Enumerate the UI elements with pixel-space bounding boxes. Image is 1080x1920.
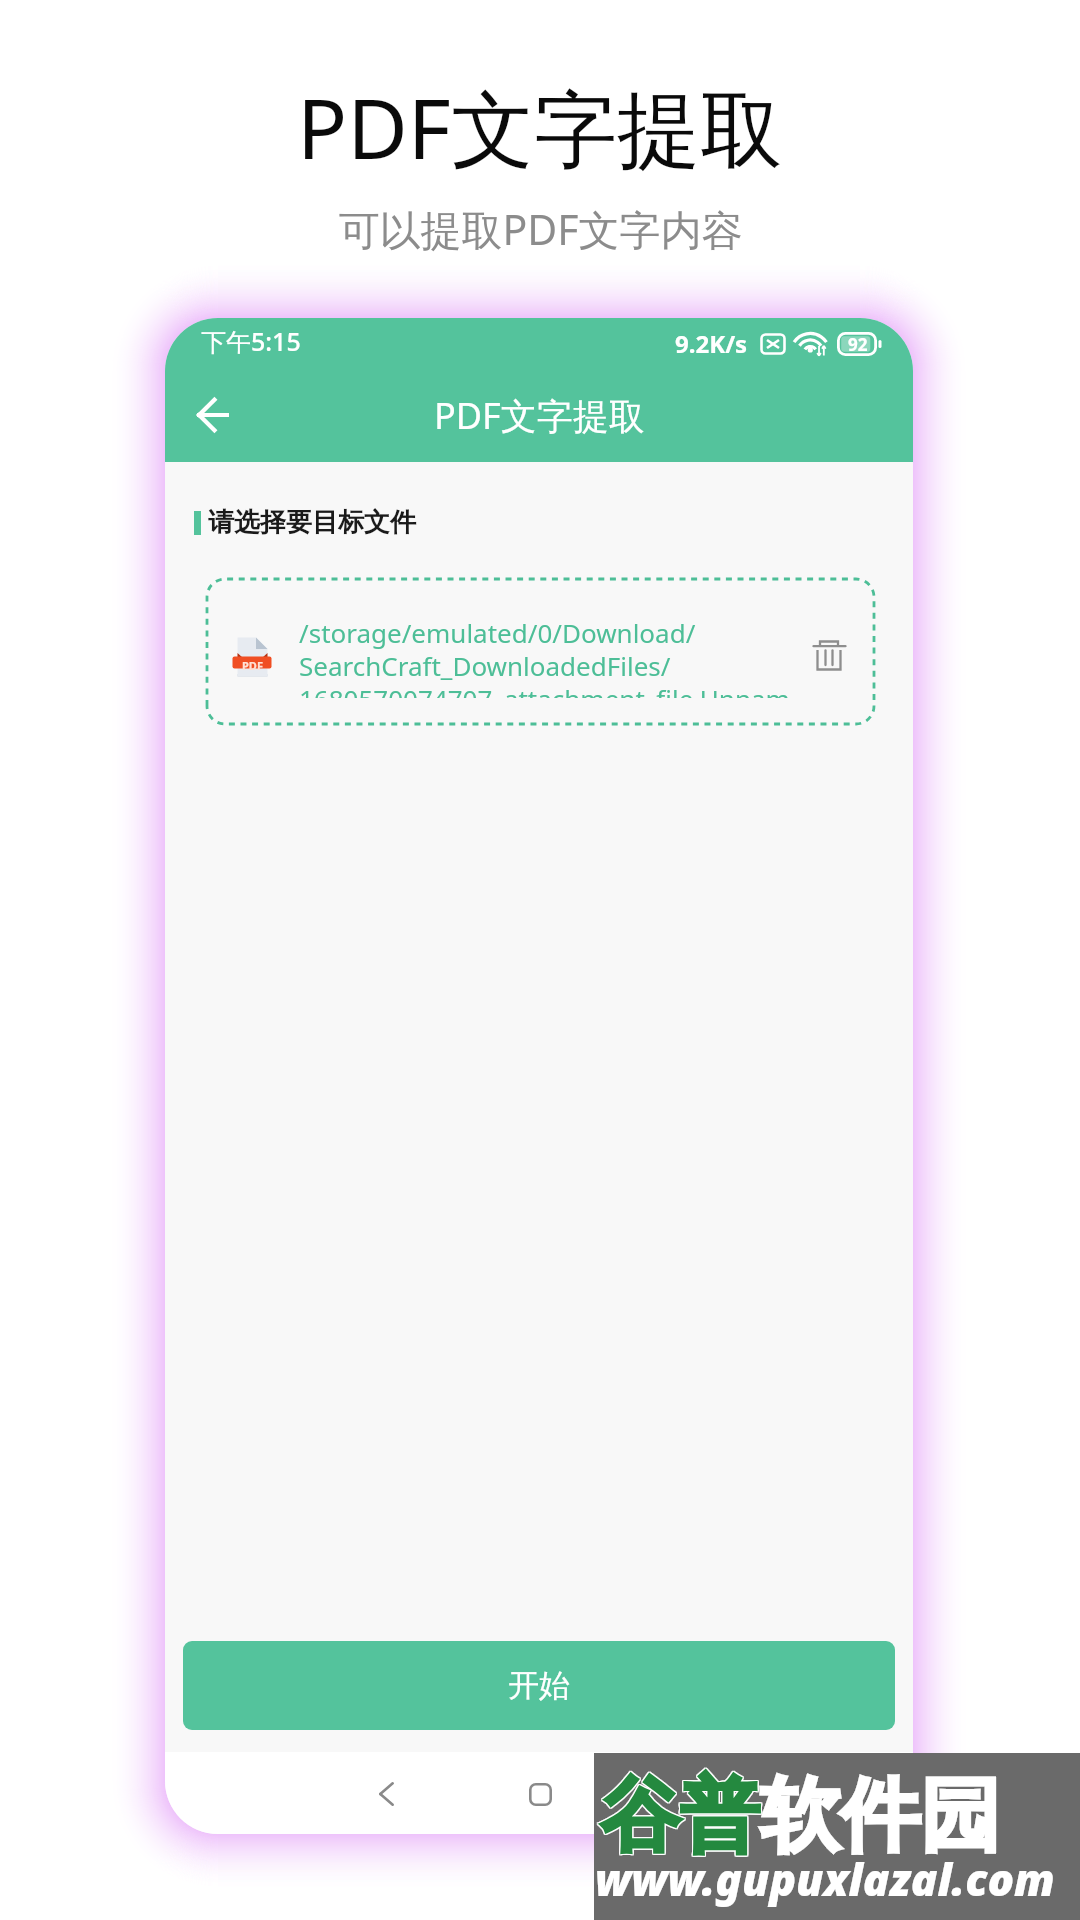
staticText: 谷普 — [601, 1765, 761, 1866]
staticText: 谷普 — [601, 1766, 761, 1867]
staticText: 谷普 — [600, 1765, 760, 1866]
button[interactable]: Back — [184, 386, 242, 444]
staticText: PDF文字提取 — [297, 70, 783, 183]
staticText: 开始 — [508, 1666, 570, 1705]
staticText: 可以提取PDF文字内容 — [338, 201, 743, 257]
staticText: PDF文字提取 — [434, 391, 645, 440]
button[interactable]: Recents — [509, 1763, 571, 1825]
button[interactable]: PDF — [207, 579, 874, 724]
staticText: /storage/emulated/0/Download/ SearchCraf… — [299, 615, 799, 698]
button[interactable]: 开始 — [183, 1641, 895, 1730]
staticText: 谷普 — [599, 1766, 759, 1867]
staticText: 谷普 — [599, 1767, 759, 1868]
button[interactable]: Back — [355, 1763, 417, 1825]
staticText: 请选择要目标文件 — [208, 506, 416, 539]
staticText: PDF — [242, 658, 263, 673]
button[interactable]: Watermark — [594, 1753, 1080, 1920]
staticText: 9.2K/s — [675, 327, 748, 360]
staticText: 谷普 — [600, 1766, 760, 1867]
staticText: 谷普 — [600, 1767, 760, 1868]
button[interactable]: Delete — [801, 627, 857, 683]
staticText: 谷普 — [601, 1767, 761, 1868]
staticText: 软件园 — [760, 1766, 1000, 1867]
staticText: 谷普 — [599, 1765, 759, 1866]
staticText: 92 — [848, 333, 868, 356]
staticText: 下午5:15 — [201, 324, 301, 358]
staticText: www.gupuxlazal.com — [595, 1849, 1055, 1909]
